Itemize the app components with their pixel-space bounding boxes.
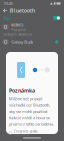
button[interactable]: OK	[9, 137, 55, 141]
staticText: Znova túto správu nezobrazovať	[14, 130, 38, 137]
staticText: Dostupné zariadenia	[3, 33, 31, 36]
button[interactable]: Galaxy Buds	[0, 37, 64, 47]
staticText: Môžete tiež pripojiť slúchadlá cez Bluet…	[9, 96, 54, 127]
staticText: Pripojené	[11, 28, 26, 32]
staticText: Bluetooth	[10, 7, 35, 14]
staticText: Galaxy Buds	[11, 39, 33, 45]
button[interactable]: MIMO	[0, 22, 64, 32]
button[interactable]: Znova túto správu nezobrazovať	[9, 127, 55, 137]
staticText: Poznámka	[9, 87, 35, 94]
staticText: MIMO	[11, 22, 23, 28]
button[interactable]: Bluetooth on	[53, 16, 60, 20]
staticText: 10:26	[3, 1, 12, 6]
button[interactable]: Back	[3, 7, 8, 14]
staticText: Zap.	[3, 15, 10, 21]
